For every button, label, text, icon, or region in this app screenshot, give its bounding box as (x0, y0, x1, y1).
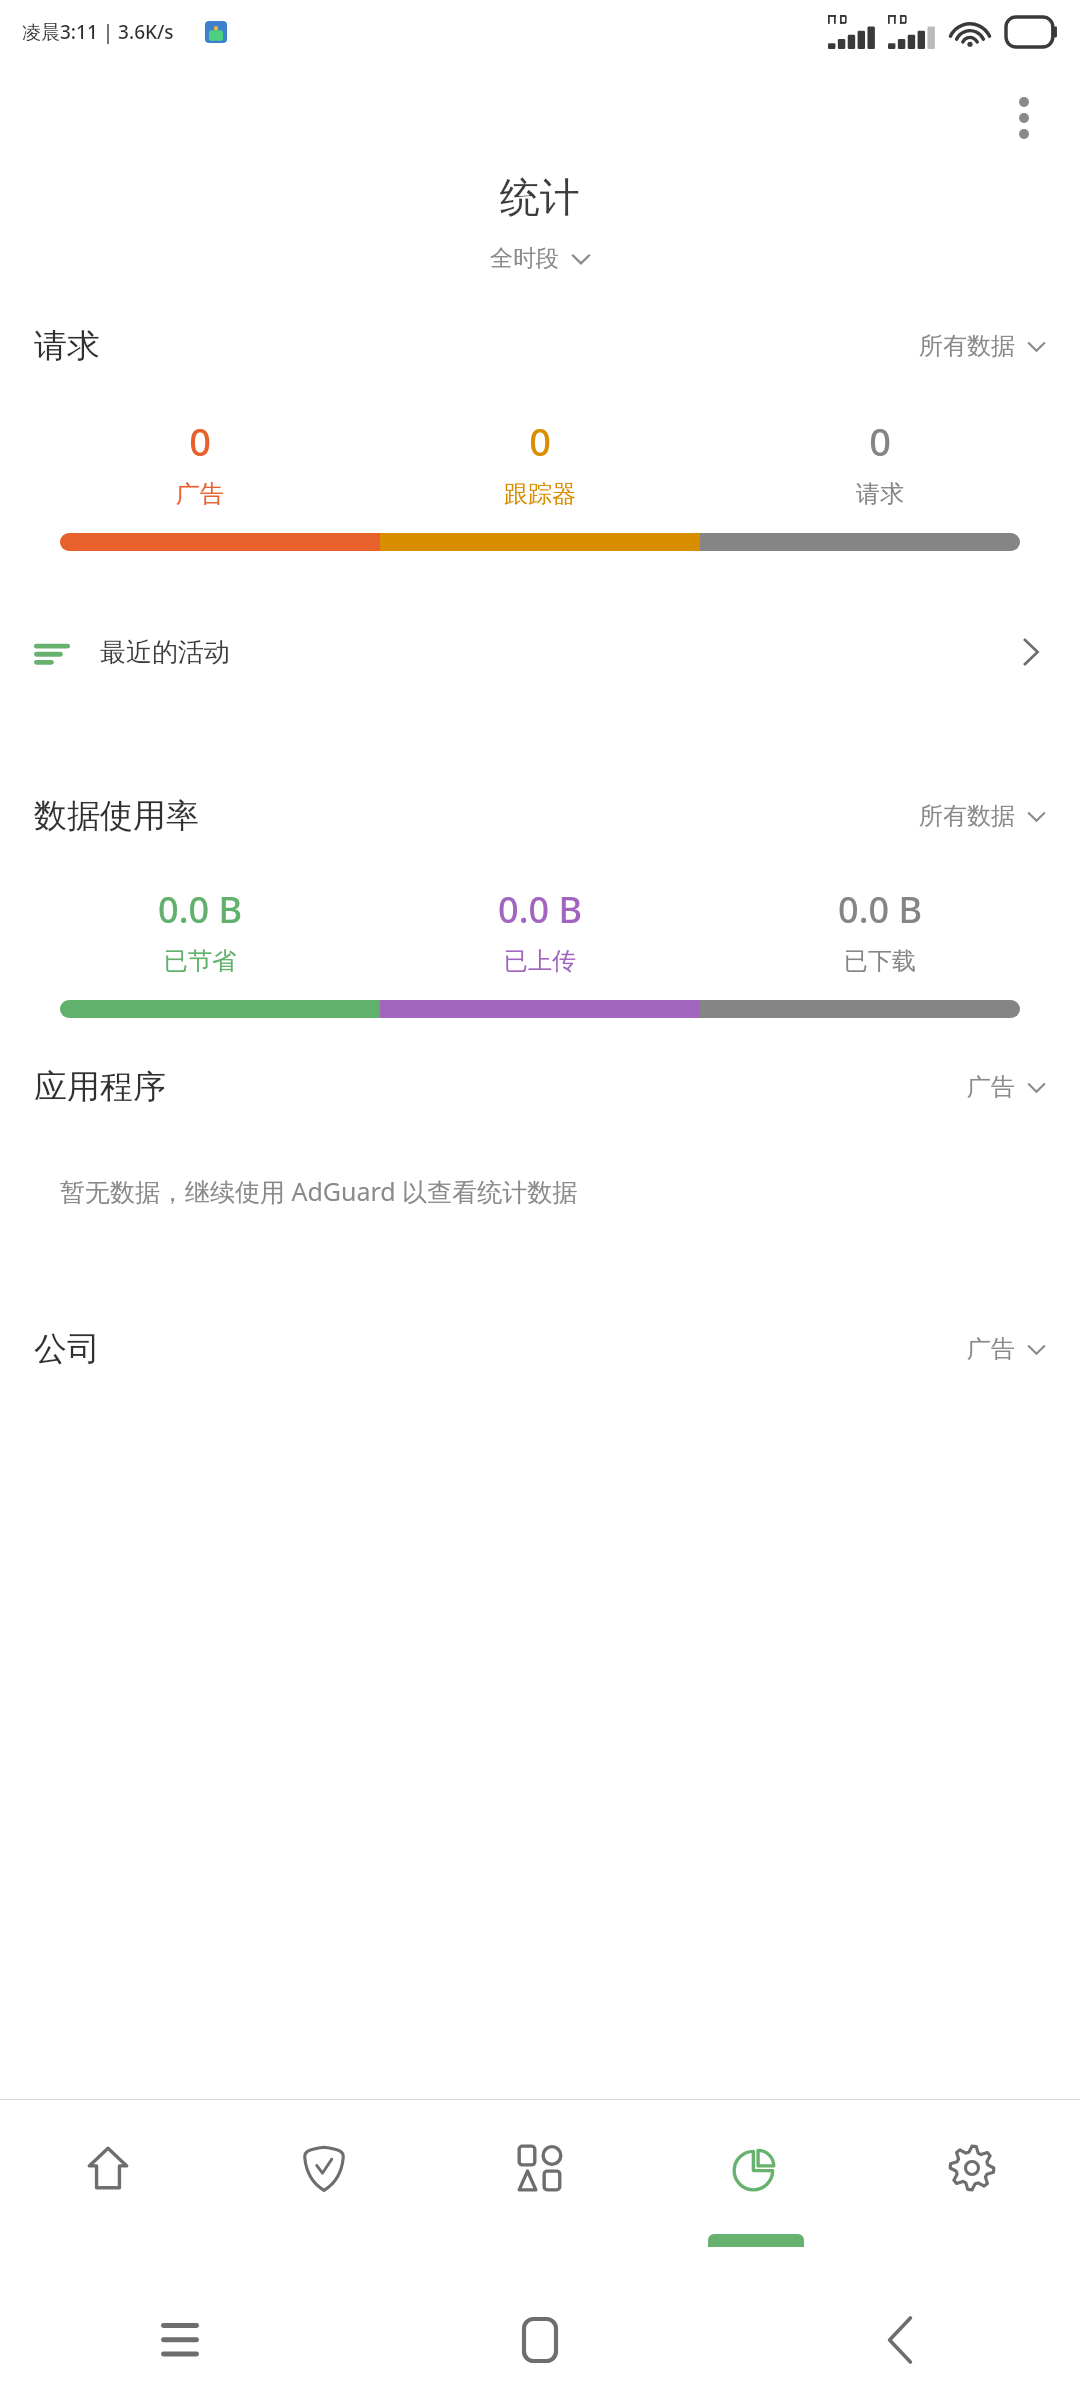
button[interactable]: 0.0 B (370, 885, 710, 976)
button[interactable]: Statistics (648, 2100, 864, 2280)
staticText: 请求 (34, 325, 100, 367)
staticText: 0.0 B (838, 885, 922, 934)
button[interactable]: 0 (710, 415, 1050, 509)
staticText: 统计 (0, 172, 1080, 222)
staticText: 请求 (856, 479, 904, 509)
button[interactable]: Apps (432, 2100, 648, 2280)
staticText: 凌晨3:11 | 3.6K/s (22, 19, 174, 45)
staticText: 所有数据 (919, 331, 1015, 361)
staticText: 0 (189, 415, 211, 467)
staticText: 公司 (34, 1328, 100, 1370)
staticText: 所有数据 (919, 801, 1015, 831)
staticText: 广告 (176, 479, 224, 509)
button[interactable]: 全时段 (0, 244, 1080, 273)
staticText: 0 (529, 415, 551, 467)
button[interactable]: 0.0 B (710, 885, 1050, 976)
button[interactable]: 所有数据 (919, 801, 1046, 831)
staticText: 0 (869, 415, 891, 467)
button[interactable]: More options (988, 82, 1060, 154)
staticText: 全时段 (490, 244, 559, 273)
staticText: 广告 (967, 1072, 1015, 1102)
staticText: 0.0 B (158, 885, 242, 934)
staticText: 跟踪器 (504, 479, 576, 509)
button[interactable]: 0.0 B (30, 885, 370, 976)
staticText: 广告 (967, 1334, 1015, 1364)
button[interactable]: 0 (370, 415, 710, 509)
button[interactable]: Settings (864, 2100, 1080, 2280)
staticText: 已上传 (504, 946, 576, 976)
button[interactable]: Recents (0, 2280, 360, 2400)
button[interactable]: Protection (216, 2100, 432, 2280)
staticText: 已下载 (844, 946, 916, 976)
staticText: 0.0 B (498, 885, 582, 934)
button[interactable]: 最近的活动 (0, 597, 1080, 707)
staticText: 最近的活动 (100, 636, 230, 669)
button[interactable]: Back (720, 2280, 1080, 2400)
staticText: 数据使用率 (34, 795, 199, 837)
staticText: 已节省 (164, 946, 236, 976)
staticText: 应用程序 (34, 1066, 166, 1108)
button[interactable]: 广告 (967, 1334, 1046, 1364)
button[interactable]: Home (360, 2280, 720, 2400)
button[interactable]: 广告 (967, 1072, 1046, 1102)
button[interactable]: Home (0, 2100, 216, 2280)
staticText: 暂无数据，继续使用 AdGuard 以查看统计数据 (60, 1174, 578, 1208)
button[interactable]: 0 (30, 415, 370, 509)
button[interactable]: 所有数据 (919, 331, 1046, 361)
